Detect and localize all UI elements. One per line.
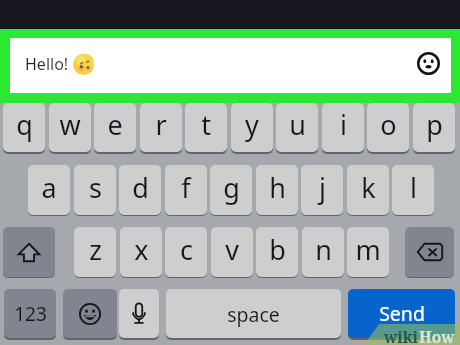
staticText: Send — [379, 300, 425, 327]
staticText: u — [289, 106, 306, 143]
button[interactable]: x — [120, 227, 162, 277]
staticText: l — [410, 169, 417, 206]
button[interactable]: t — [185, 103, 227, 152]
staticText: v — [225, 231, 239, 268]
button[interactable]: e — [94, 103, 136, 152]
staticText: space — [227, 301, 280, 328]
staticText: How — [419, 326, 455, 345]
button[interactable]: Send — [348, 289, 455, 338]
button[interactable]: n — [302, 227, 344, 277]
staticText: j — [319, 169, 326, 206]
staticText: w — [59, 106, 81, 143]
button[interactable]: g — [210, 165, 252, 215]
button[interactable]: Emoji keyboard — [63, 289, 117, 338]
staticText: t — [201, 106, 211, 143]
staticText: b — [269, 231, 286, 268]
staticText: x — [134, 231, 149, 268]
staticText: g — [223, 169, 240, 206]
button[interactable]: space — [166, 289, 341, 338]
button[interactable]: 123 — [4, 289, 56, 338]
staticText: a — [41, 169, 57, 206]
button[interactable]: z — [74, 227, 116, 277]
button[interactable]: l — [392, 165, 434, 215]
staticText: p — [426, 106, 443, 143]
staticText: i — [340, 106, 347, 143]
button[interactable]: h — [256, 165, 298, 215]
button[interactable]: o — [367, 103, 409, 152]
staticText: q — [16, 106, 33, 143]
button[interactable]: d — [119, 165, 161, 215]
button[interactable]: s — [74, 165, 116, 215]
button[interactable]: i — [322, 103, 364, 152]
button[interactable]: a — [28, 165, 70, 215]
button[interactable]: c — [165, 227, 207, 277]
button[interactable]: Hello! — [10, 38, 451, 93]
staticText: k — [361, 169, 376, 206]
staticText: m — [355, 231, 381, 268]
staticText: Hello! — [25, 53, 69, 75]
button[interactable]: Voice input — [119, 289, 159, 338]
staticText: d — [132, 169, 149, 206]
button[interactable]: r — [140, 103, 182, 152]
staticText: e — [107, 106, 123, 143]
button[interactable]: Shift — [3, 227, 55, 277]
button[interactable]: k — [347, 165, 389, 215]
staticText: s — [89, 169, 102, 206]
staticText: z — [89, 231, 102, 268]
staticText: h — [269, 169, 286, 206]
button[interactable]: j — [301, 165, 343, 215]
staticText: wiki — [384, 326, 419, 345]
button[interactable]: f — [165, 165, 207, 215]
button[interactable]: v — [211, 227, 253, 277]
staticText: f — [181, 169, 191, 206]
staticText: 123 — [14, 301, 47, 327]
button[interactable]: Emoji picker — [416, 51, 440, 75]
staticText: r — [155, 106, 167, 143]
staticText: y — [245, 106, 259, 143]
button[interactable]: m — [347, 227, 389, 277]
button[interactable]: w — [49, 103, 91, 152]
staticText: n — [315, 231, 332, 268]
button[interactable]: p — [413, 103, 455, 152]
button[interactable]: Backspace — [405, 227, 454, 277]
button[interactable]: y — [231, 103, 273, 152]
button[interactable]: q — [3, 103, 45, 152]
button[interactable]: b — [256, 227, 298, 277]
staticText: o — [380, 106, 397, 143]
button[interactable]: u — [276, 103, 318, 152]
staticText: c — [180, 231, 193, 268]
